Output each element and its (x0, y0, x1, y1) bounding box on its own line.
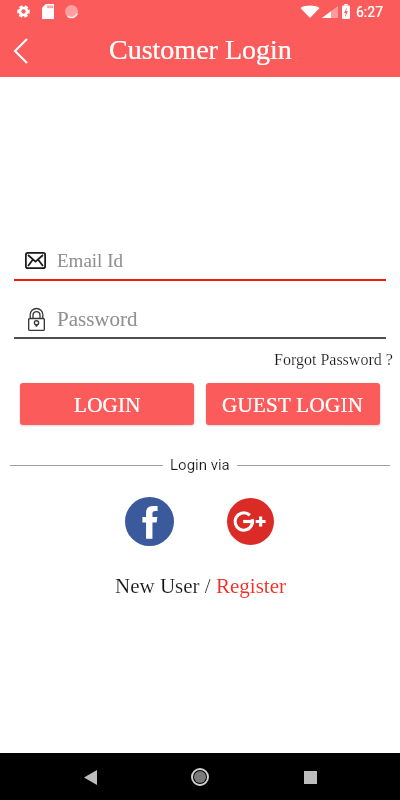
button[interactable]: Back (70, 757, 110, 797)
staticText: LOGIN (74, 393, 141, 416)
staticText: Register (216, 574, 286, 597)
button[interactable]: Sign in with Facebook (125, 497, 174, 546)
button[interactable]: Email Id input field (0, 250, 400, 282)
staticText: Password (57, 307, 138, 330)
button[interactable]: Home (180, 757, 220, 797)
button[interactable]: GUEST LOGIN (206, 383, 380, 425)
button[interactable]: Back (1, 25, 43, 77)
button[interactable]: Sign in with Google Plus (227, 498, 274, 545)
button[interactable]: Forgot Password ? (264, 348, 400, 374)
staticText: GUEST LOGIN (222, 393, 364, 416)
staticText: Email Id (57, 250, 123, 271)
button[interactable]: Recent apps (290, 757, 330, 797)
staticText: New User / (115, 574, 216, 597)
staticText: Customer Login (109, 34, 292, 65)
button[interactable]: LOGIN (20, 383, 194, 425)
button[interactable]: Register (216, 571, 286, 600)
staticText: Login via (170, 456, 230, 474)
button[interactable]: Password input field (0, 306, 400, 340)
staticText: 6:27 (356, 4, 383, 20)
staticText: Forgot Password ? (274, 351, 393, 369)
